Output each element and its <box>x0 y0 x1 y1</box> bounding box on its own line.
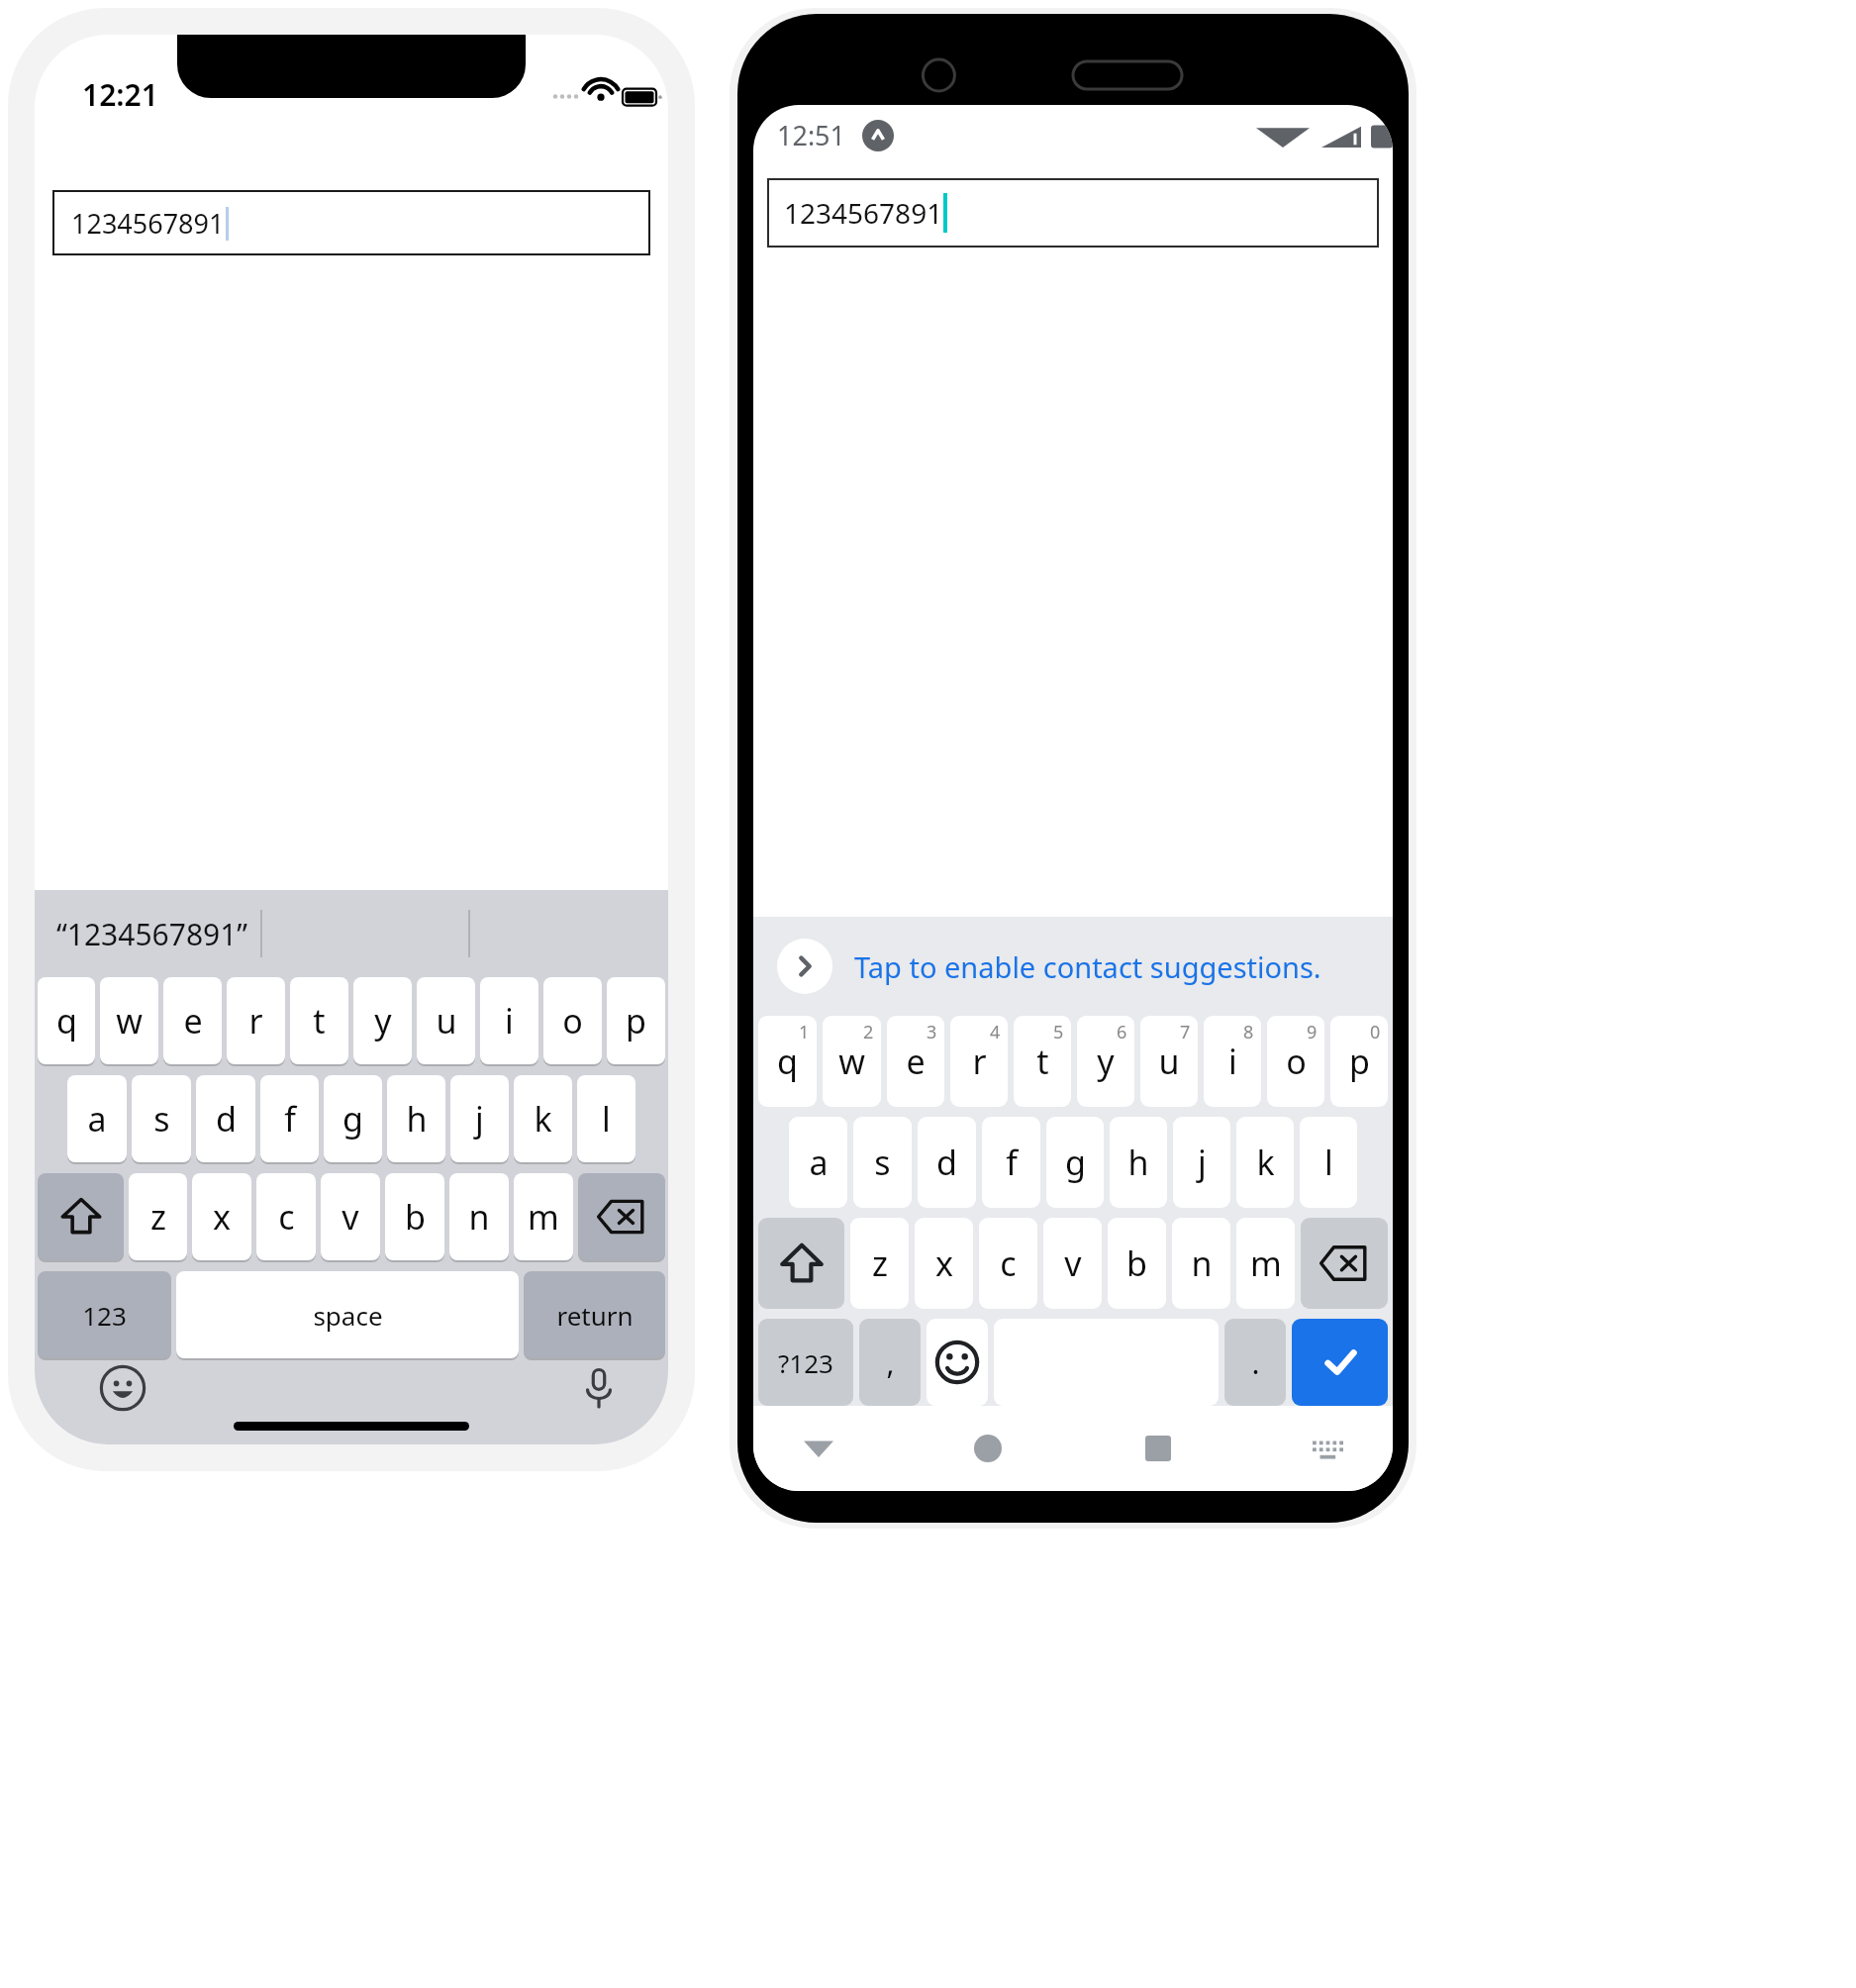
button[interactable]: o <box>1267 1016 1324 1107</box>
staticText: 5 <box>1053 1020 1064 1044</box>
button[interactable]: s <box>853 1117 912 1208</box>
button[interactable]: Home <box>962 1423 1014 1474</box>
button[interactable]: f <box>260 1075 319 1162</box>
button[interactable]: e <box>887 1016 944 1107</box>
button[interactable]: c <box>979 1218 1037 1309</box>
button[interactable]: w <box>100 977 158 1064</box>
button[interactable]: v <box>1043 1218 1102 1309</box>
button[interactable]: o <box>543 977 602 1064</box>
staticText: l <box>602 1096 611 1142</box>
staticText: 1234567891 <box>71 205 225 242</box>
button[interactable]: u <box>417 977 475 1064</box>
button[interactable]: Emoji <box>927 1319 988 1406</box>
button[interactable]: i <box>1204 1016 1261 1107</box>
button[interactable]: Backspace <box>1301 1218 1388 1309</box>
button[interactable]: v <box>321 1173 380 1260</box>
staticText: u <box>436 998 457 1044</box>
button[interactable]: w <box>823 1016 881 1107</box>
button[interactable]: return <box>524 1271 665 1358</box>
staticText: n <box>468 1194 490 1240</box>
button[interactable]: t <box>1014 1016 1071 1107</box>
staticText: a <box>87 1096 107 1142</box>
button[interactable]: q <box>38 977 95 1064</box>
button[interactable]: r <box>227 977 285 1064</box>
button[interactable]: b <box>385 1173 444 1260</box>
button[interactable]: , <box>859 1319 921 1406</box>
button[interactable]: m <box>1236 1218 1295 1309</box>
button[interactable]: n <box>449 1173 509 1260</box>
staticText: g <box>1065 1140 1086 1185</box>
button[interactable]: s <box>132 1075 191 1162</box>
staticText: 3 <box>927 1020 937 1044</box>
button[interactable]: i <box>480 977 538 1064</box>
button[interactable]: y <box>353 977 412 1064</box>
staticText: 4 <box>990 1020 1001 1044</box>
button[interactable]: p <box>607 977 665 1064</box>
button[interactable]: Dictation <box>577 1366 621 1410</box>
button[interactable]: d <box>196 1075 255 1162</box>
button[interactable]: g <box>1046 1117 1104 1208</box>
button[interactable]: . <box>1224 1319 1286 1406</box>
staticText: v <box>1064 1241 1082 1286</box>
staticText: i <box>1228 1039 1237 1084</box>
button[interactable]: y <box>1077 1016 1134 1107</box>
button[interactable]: a <box>67 1075 127 1162</box>
button[interactable]: 123 <box>38 1271 171 1358</box>
button[interactable]: h <box>1110 1117 1167 1208</box>
staticText: space <box>313 1298 383 1333</box>
button[interactable]: z <box>129 1173 187 1260</box>
button[interactable]: e <box>163 977 222 1064</box>
button[interactable]: z <box>850 1218 909 1309</box>
button[interactable]: q <box>758 1016 817 1107</box>
button[interactable]: d <box>918 1117 976 1208</box>
button[interactable]: m <box>514 1173 573 1260</box>
staticText: c <box>1000 1241 1017 1286</box>
button[interactable]: Emoji <box>100 1365 146 1411</box>
button[interactable]: n <box>1172 1218 1230 1309</box>
button[interactable]: g <box>324 1075 382 1162</box>
staticText: q <box>56 998 77 1044</box>
staticText: s <box>874 1140 891 1185</box>
button[interactable]: p <box>1330 1016 1388 1107</box>
button[interactable]: f <box>982 1117 1040 1208</box>
button[interactable]: a <box>789 1117 847 1208</box>
button[interactable]: x <box>192 1173 251 1260</box>
button[interactable]: ?123 <box>758 1319 853 1406</box>
button[interactable]: u <box>1140 1016 1198 1107</box>
button[interactable]: “1234567891” <box>56 914 248 954</box>
button[interactable]: k <box>1236 1117 1294 1208</box>
button[interactable]: h <box>387 1075 445 1162</box>
staticText: d <box>936 1140 957 1185</box>
button[interactable]: l <box>1300 1117 1357 1208</box>
button[interactable]: b <box>1108 1218 1166 1309</box>
staticText: 12:21 <box>82 74 158 115</box>
staticText: w <box>116 998 143 1044</box>
button[interactable]: Enter <box>1292 1319 1388 1406</box>
staticText: i <box>505 998 514 1044</box>
button[interactable]: 1234567891 <box>767 178 1379 248</box>
button[interactable]: Hide keyboard <box>1302 1423 1353 1474</box>
staticText: return <box>556 1298 634 1333</box>
staticText: w <box>838 1039 865 1084</box>
staticText: ?123 <box>778 1345 833 1380</box>
button[interactable]: l <box>577 1075 635 1162</box>
button[interactable]: t <box>290 977 348 1064</box>
button[interactable]: k <box>514 1075 572 1162</box>
button[interactable]: 1234567891 <box>52 190 650 255</box>
staticText: u <box>1158 1039 1180 1084</box>
button[interactable]: Shift <box>38 1173 124 1260</box>
button[interactable]: r <box>950 1016 1008 1107</box>
staticText: h <box>1127 1140 1149 1185</box>
staticText: e <box>906 1039 926 1084</box>
button[interactable]: j <box>450 1075 509 1162</box>
button[interactable]: j <box>1173 1117 1230 1208</box>
button[interactable]: c <box>256 1173 316 1260</box>
button[interactable]: Shift <box>758 1218 844 1309</box>
button[interactable]: x <box>915 1218 973 1309</box>
button[interactable]: Back <box>793 1423 844 1474</box>
button[interactable]: Tap to enable contact suggestions. <box>753 917 1393 1016</box>
button[interactable]: space <box>176 1271 519 1358</box>
button[interactable]: Backspace <box>578 1173 665 1260</box>
button[interactable]: Recents <box>1132 1423 1184 1474</box>
